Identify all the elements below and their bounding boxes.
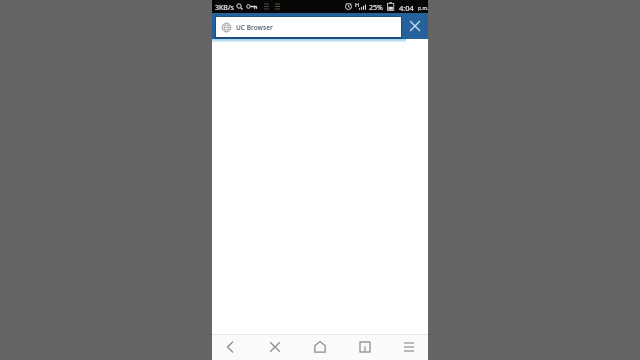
button[interactable] bbox=[391, 334, 427, 360]
staticText: 3KB/s bbox=[215, 3, 234, 13]
button[interactable] bbox=[212, 334, 248, 360]
staticText: 25% bbox=[369, 3, 383, 13]
button[interactable] bbox=[257, 334, 293, 360]
staticText: p.m. bbox=[418, 5, 429, 12]
button[interactable] bbox=[302, 334, 338, 360]
button[interactable] bbox=[402, 13, 428, 39]
button[interactable]: UC Browser bbox=[216, 17, 401, 37]
staticText: UC Browser bbox=[236, 23, 273, 32]
staticText: H bbox=[355, 1, 360, 9]
staticText: 4:04 bbox=[399, 3, 414, 13]
button[interactable] bbox=[347, 334, 383, 360]
